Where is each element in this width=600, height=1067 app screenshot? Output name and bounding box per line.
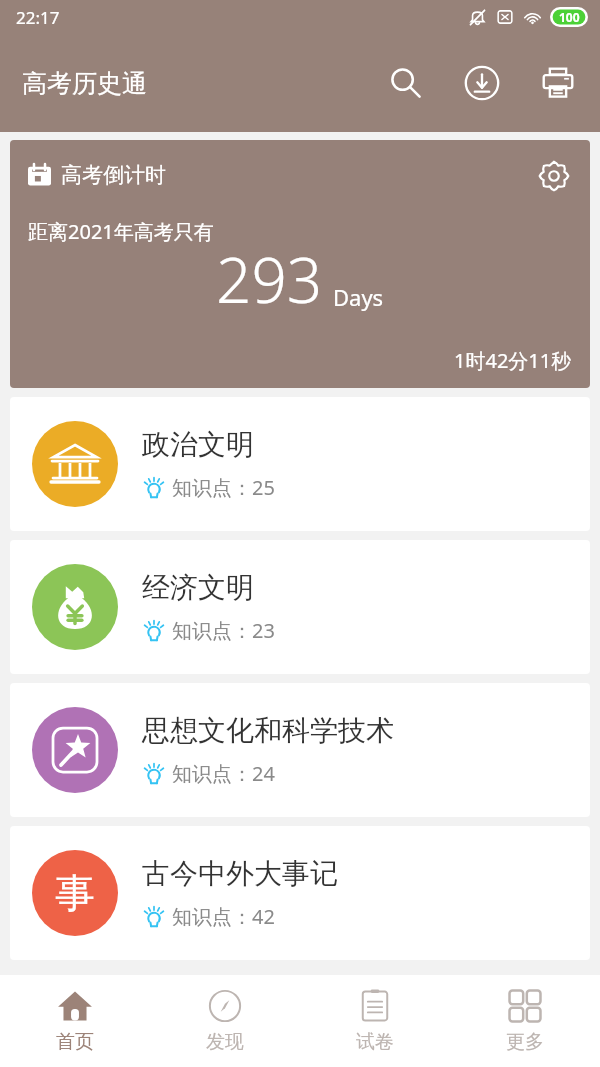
button[interactable]: 试卷 [300, 975, 450, 1067]
staticText: 高考倒计时 [61, 162, 166, 188]
staticText: 100 [559, 9, 580, 25]
staticText: 知识点：24 [172, 760, 275, 787]
staticText: 22:17 [16, 6, 60, 29]
staticText: Days [333, 282, 384, 312]
staticText: 知识点：42 [172, 903, 275, 930]
staticText: 知识点：23 [172, 617, 275, 644]
staticText: 高考历史通 [22, 68, 147, 99]
staticText: 古今中外大事记 [142, 856, 338, 891]
button[interactable]: 政治文明 [10, 397, 590, 531]
staticText: 距离2021年高考只有 [28, 218, 214, 245]
staticText: 试卷 [356, 1030, 394, 1054]
button[interactable]: 高考倒计时 [10, 140, 590, 388]
button[interactable]: 事 [10, 826, 590, 960]
staticText: 1时42分11秒 [454, 347, 572, 374]
button[interactable]: Search [378, 55, 434, 111]
button[interactable]: 更多 [450, 975, 600, 1067]
button[interactable]: Settings [530, 152, 578, 200]
staticText: 事 [55, 868, 95, 918]
staticText: 思想文化和科学技术 [142, 713, 394, 748]
staticText: 293 [216, 237, 323, 321]
staticText: 经济文明 [142, 570, 254, 605]
button[interactable]: 经济文明 [10, 540, 590, 674]
button[interactable]: 首页 [0, 975, 150, 1067]
staticText: 知识点：25 [172, 474, 275, 501]
button[interactable]: 思想文化和科学技术 [10, 683, 590, 817]
button[interactable]: 发现 [150, 975, 300, 1067]
button[interactable]: Download [454, 55, 510, 111]
staticText: 发现 [206, 1030, 244, 1054]
staticText: 政治文明 [142, 427, 254, 462]
staticText: 更多 [506, 1030, 544, 1054]
staticText: 首页 [56, 1030, 94, 1054]
button[interactable]: Print [530, 55, 586, 111]
